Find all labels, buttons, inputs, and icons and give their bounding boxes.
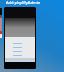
- button[interactable]: [5, 53, 35, 57]
- button[interactable]: [5, 49, 35, 53]
- button[interactable]: [5, 41, 35, 45]
- button[interactable]: [5, 45, 35, 49]
- staticText: Add phpMyAdmin: [6, 0, 41, 5]
